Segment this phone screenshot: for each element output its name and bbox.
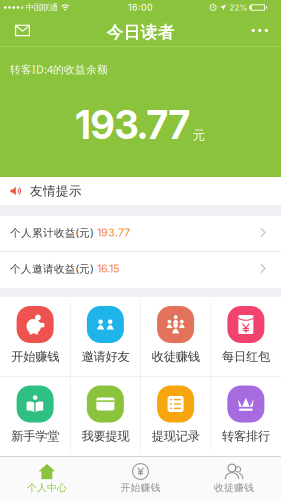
staticText: 今日读者	[106, 22, 174, 43]
staticText: 中国联通	[26, 2, 58, 13]
button[interactable]: 收徒赚钱	[187, 457, 281, 500]
button[interactable]: 转客排行	[211, 376, 281, 456]
button[interactable]: 新手学堂	[0, 376, 70, 456]
staticText: 193.77	[97, 226, 130, 239]
staticText: 收徒赚钱	[214, 481, 254, 494]
button[interactable]: 我要提现	[70, 376, 140, 456]
button[interactable]: 个人邀请收益(元)	[0, 252, 281, 288]
staticText: 收徒赚钱	[152, 349, 200, 364]
staticText: 16.15	[97, 262, 120, 275]
staticText: 开始赚钱	[11, 349, 59, 364]
button[interactable]: 个人中心	[0, 457, 94, 500]
button[interactable]: 友情提示	[0, 177, 281, 205]
staticText: 新手学堂	[11, 428, 59, 444]
staticText: 22%	[230, 3, 248, 12]
button[interactable]: 开始赚钱	[94, 457, 187, 500]
button[interactable]: 每日红包	[211, 297, 281, 376]
staticText: 个人邀请收益(元)	[10, 261, 93, 276]
staticText: 每日红包	[222, 349, 270, 364]
button[interactable]: Messages	[0, 16, 30, 45]
button[interactable]: 个人累计收益(元)	[0, 216, 281, 252]
staticText: 个人中心	[27, 481, 67, 494]
button[interactable]: 提现记录	[140, 376, 211, 456]
button[interactable]: 开始赚钱	[0, 297, 70, 376]
staticText: 转客ID:4的收益余额	[10, 62, 108, 76]
staticText: 个人累计收益(元)	[10, 225, 93, 240]
staticText: 提现记录	[152, 428, 200, 444]
staticText: 友情提示	[30, 183, 82, 199]
button[interactable]: 收徒赚钱	[140, 297, 211, 376]
staticText: 193.77	[75, 101, 189, 148]
button[interactable]: More	[252, 17, 281, 44]
staticText: 开始赚钱	[120, 481, 160, 494]
staticText: 转客排行	[222, 428, 270, 444]
staticText: 元	[192, 127, 205, 143]
button[interactable]: 邀请好友	[70, 297, 140, 376]
staticText: 邀请好友	[81, 349, 129, 364]
staticText: 16:00	[128, 2, 153, 13]
staticText: 我要提现	[81, 428, 129, 444]
